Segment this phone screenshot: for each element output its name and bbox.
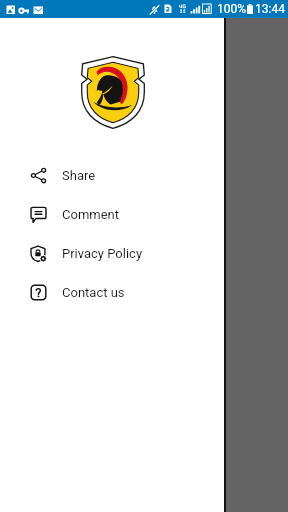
staticText: 100% [217, 2, 247, 16]
staticText: Share [62, 168, 96, 183]
button[interactable]: Share [0, 156, 224, 195]
staticText: Privacy Policy [62, 246, 143, 261]
button[interactable]: Privacy Policy [0, 234, 224, 273]
staticText: Comment [62, 207, 120, 222]
button[interactable]: Comment [0, 195, 224, 234]
staticText: 13:44 [255, 2, 285, 16]
button[interactable]: Contact us [0, 273, 224, 312]
staticText: Contact us [62, 285, 125, 300]
